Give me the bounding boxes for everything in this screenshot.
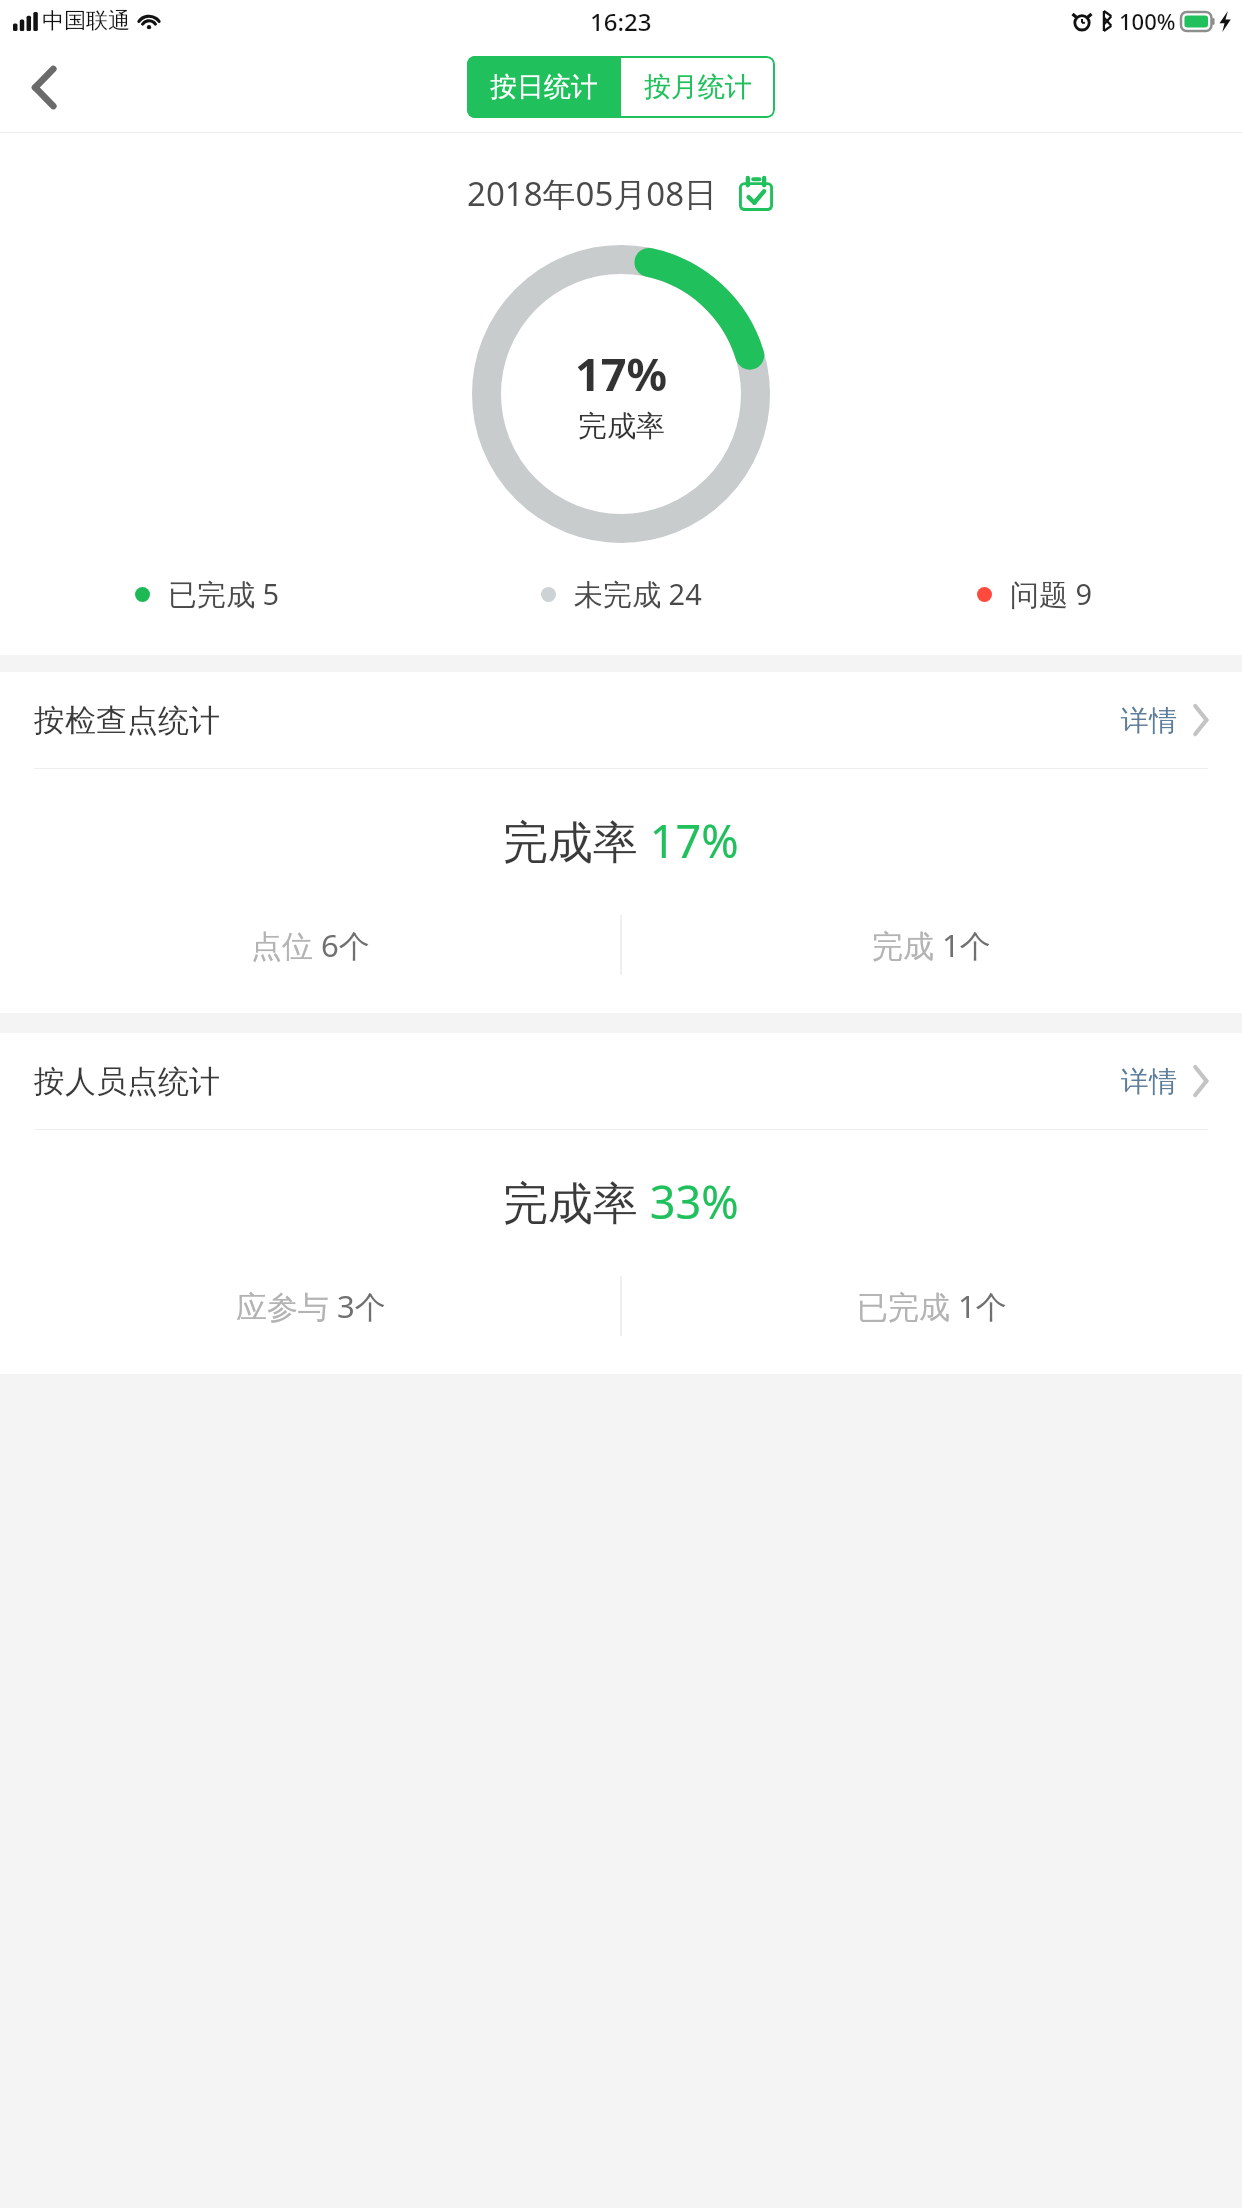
staticText: 点位 6个	[251, 924, 370, 966]
staticText: 按检查点统计	[34, 701, 1121, 740]
staticText: 17%	[575, 343, 668, 404]
staticText: 已完成 1个	[857, 1285, 1007, 1327]
button[interactable]: 未完成 24	[414, 574, 828, 614]
staticText: 按人员点统计	[34, 1062, 1121, 1101]
staticText: 完成率 17%	[503, 810, 739, 871]
staticText: 2018年05月08日	[467, 171, 718, 216]
button[interactable]: 按人员点统计	[0, 1033, 1242, 1129]
button[interactable]: 已完成 5	[0, 574, 414, 614]
button[interactable]: 按月统计	[621, 56, 775, 118]
staticText: 完成 1个	[872, 924, 991, 966]
button[interactable]: 按检查点统计	[0, 672, 1242, 768]
staticText: 完成率	[578, 408, 665, 445]
staticText: 按日统计	[490, 70, 598, 104]
staticText: 16:23	[590, 5, 652, 38]
staticText: 100%	[1119, 6, 1176, 36]
staticText: 中国联通	[42, 7, 130, 35]
staticText: 按月统计	[644, 70, 752, 104]
staticText: 应参与 3个	[236, 1285, 386, 1327]
button[interactable]: 问题 9	[828, 574, 1242, 614]
staticText: 已完成 5	[168, 574, 280, 614]
staticText: 详情	[1121, 703, 1177, 738]
button[interactable]: Pick date	[736, 174, 776, 214]
button[interactable]: Back	[0, 43, 88, 131]
button[interactable]: 按日统计	[467, 56, 621, 118]
staticText: 完成率 33%	[503, 1171, 739, 1232]
staticText: 未完成 24	[574, 574, 702, 614]
staticText: 问题 9	[1010, 574, 1093, 614]
staticText: 详情	[1121, 1064, 1177, 1099]
